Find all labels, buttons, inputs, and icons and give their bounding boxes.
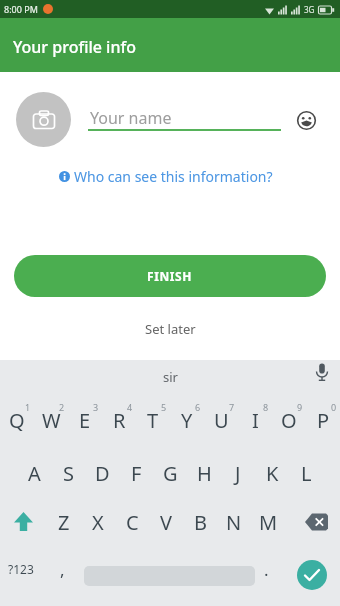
button[interactable]: U <box>204 398 238 442</box>
staticText: K <box>266 460 279 487</box>
staticText: W <box>42 407 61 434</box>
button[interactable]: J <box>221 451 255 495</box>
staticText: M <box>259 509 278 536</box>
button[interactable]: M <box>251 500 285 544</box>
button[interactable]: sir <box>0 364 340 390</box>
button[interactable]: E <box>68 398 102 442</box>
staticText: 9 <box>297 401 303 413</box>
button[interactable]: C <box>115 500 149 544</box>
button[interactable]: G <box>153 451 187 495</box>
staticText: Who can see this information? <box>74 167 273 186</box>
staticText: Your profile info <box>13 36 136 58</box>
staticText: , <box>60 558 65 581</box>
button[interactable]: N <box>217 500 251 544</box>
staticText: Y <box>181 407 193 434</box>
staticText: O <box>281 407 297 434</box>
button[interactable]: B <box>183 500 217 544</box>
staticText: sir <box>163 368 178 386</box>
button[interactable]: S <box>51 451 85 495</box>
button[interactable]: . <box>254 555 278 583</box>
staticText: 7 <box>229 401 235 413</box>
staticText: 3 <box>93 401 99 413</box>
button[interactable]: K <box>255 451 289 495</box>
button[interactable]: ?123 <box>4 555 38 583</box>
staticText: 5 <box>161 401 167 413</box>
button[interactable]: H <box>187 451 221 495</box>
staticText: F <box>131 460 142 487</box>
button[interactable]: T <box>136 398 170 442</box>
button[interactable]: Y <box>170 398 204 442</box>
staticText: A <box>28 460 41 487</box>
staticText: Set later <box>145 320 196 338</box>
staticText: T <box>147 407 159 434</box>
button[interactable] <box>6 500 40 544</box>
staticText: Your name <box>90 107 172 129</box>
button[interactable]: Who can see this information? <box>59 165 273 187</box>
staticText: ?123 <box>8 561 34 577</box>
staticText: 8:00 PM <box>4 3 38 15</box>
staticText: L <box>301 460 312 487</box>
button[interactable]: Set later <box>0 318 340 339</box>
staticText: Z <box>58 509 70 536</box>
button[interactable]: Q <box>0 398 34 442</box>
staticText: U <box>214 407 229 434</box>
staticText: X <box>92 509 104 536</box>
staticText: 3G <box>304 4 315 15</box>
button[interactable] <box>16 92 71 147</box>
button[interactable]: W <box>34 398 68 442</box>
staticText: D <box>95 460 110 487</box>
button[interactable]: F <box>119 451 153 495</box>
button[interactable] <box>297 560 327 590</box>
staticText: 1 <box>25 401 31 413</box>
button[interactable] <box>298 500 336 544</box>
button[interactable]: P <box>306 398 340 442</box>
staticText: V <box>160 509 172 536</box>
staticText: 4 <box>127 401 133 413</box>
button[interactable]: , <box>50 555 74 583</box>
staticText: FINISH <box>147 268 193 284</box>
staticText: 0 <box>331 401 337 413</box>
staticText: Q <box>9 407 25 434</box>
staticText: N <box>226 509 242 536</box>
staticText: I <box>252 407 259 434</box>
staticText: H <box>197 460 212 487</box>
button[interactable]: A <box>17 451 51 495</box>
button[interactable] <box>315 363 329 382</box>
button[interactable]: Z <box>47 500 81 544</box>
button[interactable]: I <box>238 398 272 442</box>
staticText: 6 <box>195 401 201 413</box>
staticText: S <box>63 460 74 487</box>
staticText: E <box>79 407 91 434</box>
button[interactable]: L <box>289 451 323 495</box>
staticText: C <box>126 509 139 536</box>
staticText: R <box>113 407 126 434</box>
button[interactable]: D <box>85 451 119 495</box>
button[interactable] <box>294 108 319 133</box>
staticText: . <box>264 558 269 581</box>
button[interactable]: R <box>102 398 136 442</box>
staticText: G <box>163 460 178 487</box>
staticText: J <box>235 460 241 487</box>
staticText: B <box>194 509 207 536</box>
staticText: 2 <box>59 401 65 413</box>
button[interactable]: V <box>149 500 183 544</box>
button[interactable]: X <box>81 500 115 544</box>
button[interactable]: O <box>272 398 306 442</box>
staticText: 8 <box>263 401 269 413</box>
staticText: P <box>317 407 330 434</box>
button[interactable]: FINISH <box>14 255 326 297</box>
